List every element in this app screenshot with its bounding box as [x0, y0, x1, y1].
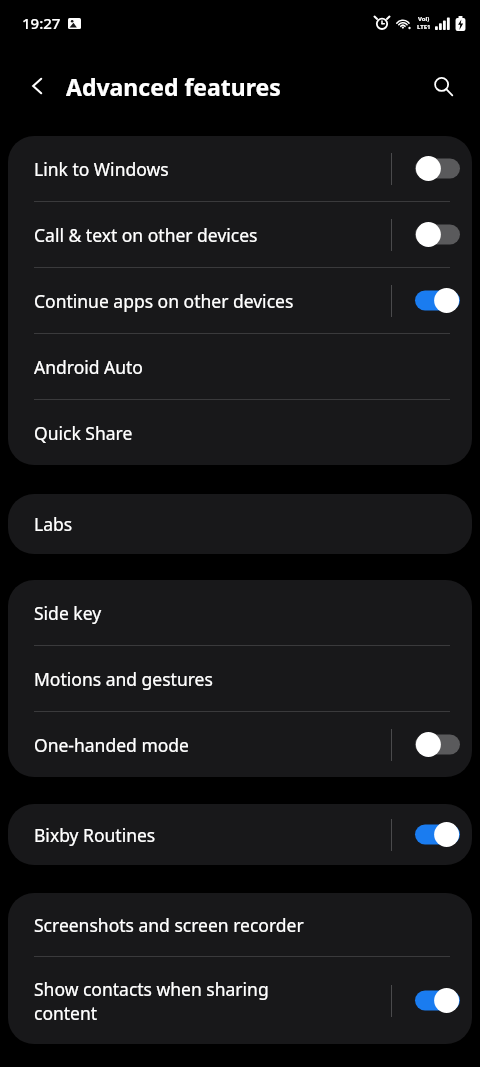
button[interactable]: One-handed mode toggle [415, 732, 460, 757]
button[interactable]: Call & text on other devices toggle [415, 222, 460, 247]
staticText: Link to Windows [34, 157, 169, 181]
button[interactable]: Link to Windows [8, 136, 472, 201]
staticText: Call & text on other devices [34, 223, 258, 247]
button[interactable]: Link to Windows toggle [415, 156, 460, 181]
button[interactable]: Quick Share [8, 400, 472, 465]
button[interactable]: Side key [8, 580, 472, 645]
button[interactable]: Call & text on other devices [8, 202, 472, 267]
staticText: Bixby Routines [34, 823, 156, 847]
staticText: 19:27 [22, 13, 61, 33]
button[interactable]: Android Auto [8, 334, 472, 399]
staticText: Continue apps on other devices [34, 289, 294, 313]
staticText: LTE1 [417, 23, 431, 31]
button[interactable]: Back [16, 64, 60, 108]
button[interactable]: Bixby Routines [8, 804, 472, 865]
staticText: Show contacts when sharing [34, 977, 269, 1001]
button[interactable]: Labs [8, 494, 472, 554]
staticText: Side key [34, 601, 102, 625]
button[interactable]: Continue apps on other devices toggle [415, 288, 460, 313]
staticText: content [34, 1001, 98, 1025]
button[interactable]: Continue apps on other devices [8, 268, 472, 333]
staticText: Screenshots and screen recorder [34, 913, 304, 937]
staticText: Quick Share [34, 421, 133, 445]
staticText: Android Auto [34, 355, 143, 379]
staticText: One-handed mode [34, 733, 189, 757]
button[interactable]: One-handed mode [8, 712, 472, 777]
button[interactable]: Motions and gestures [8, 646, 472, 711]
button[interactable]: Show contacts when sharing toggle [415, 988, 460, 1013]
staticText: Labs [34, 512, 73, 536]
button[interactable]: Screenshots and screen recorder [8, 893, 472, 956]
staticText: Advanced features [66, 71, 281, 102]
button[interactable]: Bixby Routines toggle [415, 822, 460, 847]
button[interactable]: Search [421, 64, 465, 108]
staticText: Motions and gestures [34, 667, 213, 691]
button[interactable]: Show contacts when sharing [8, 957, 472, 1044]
staticText: Vol) [418, 15, 430, 23]
